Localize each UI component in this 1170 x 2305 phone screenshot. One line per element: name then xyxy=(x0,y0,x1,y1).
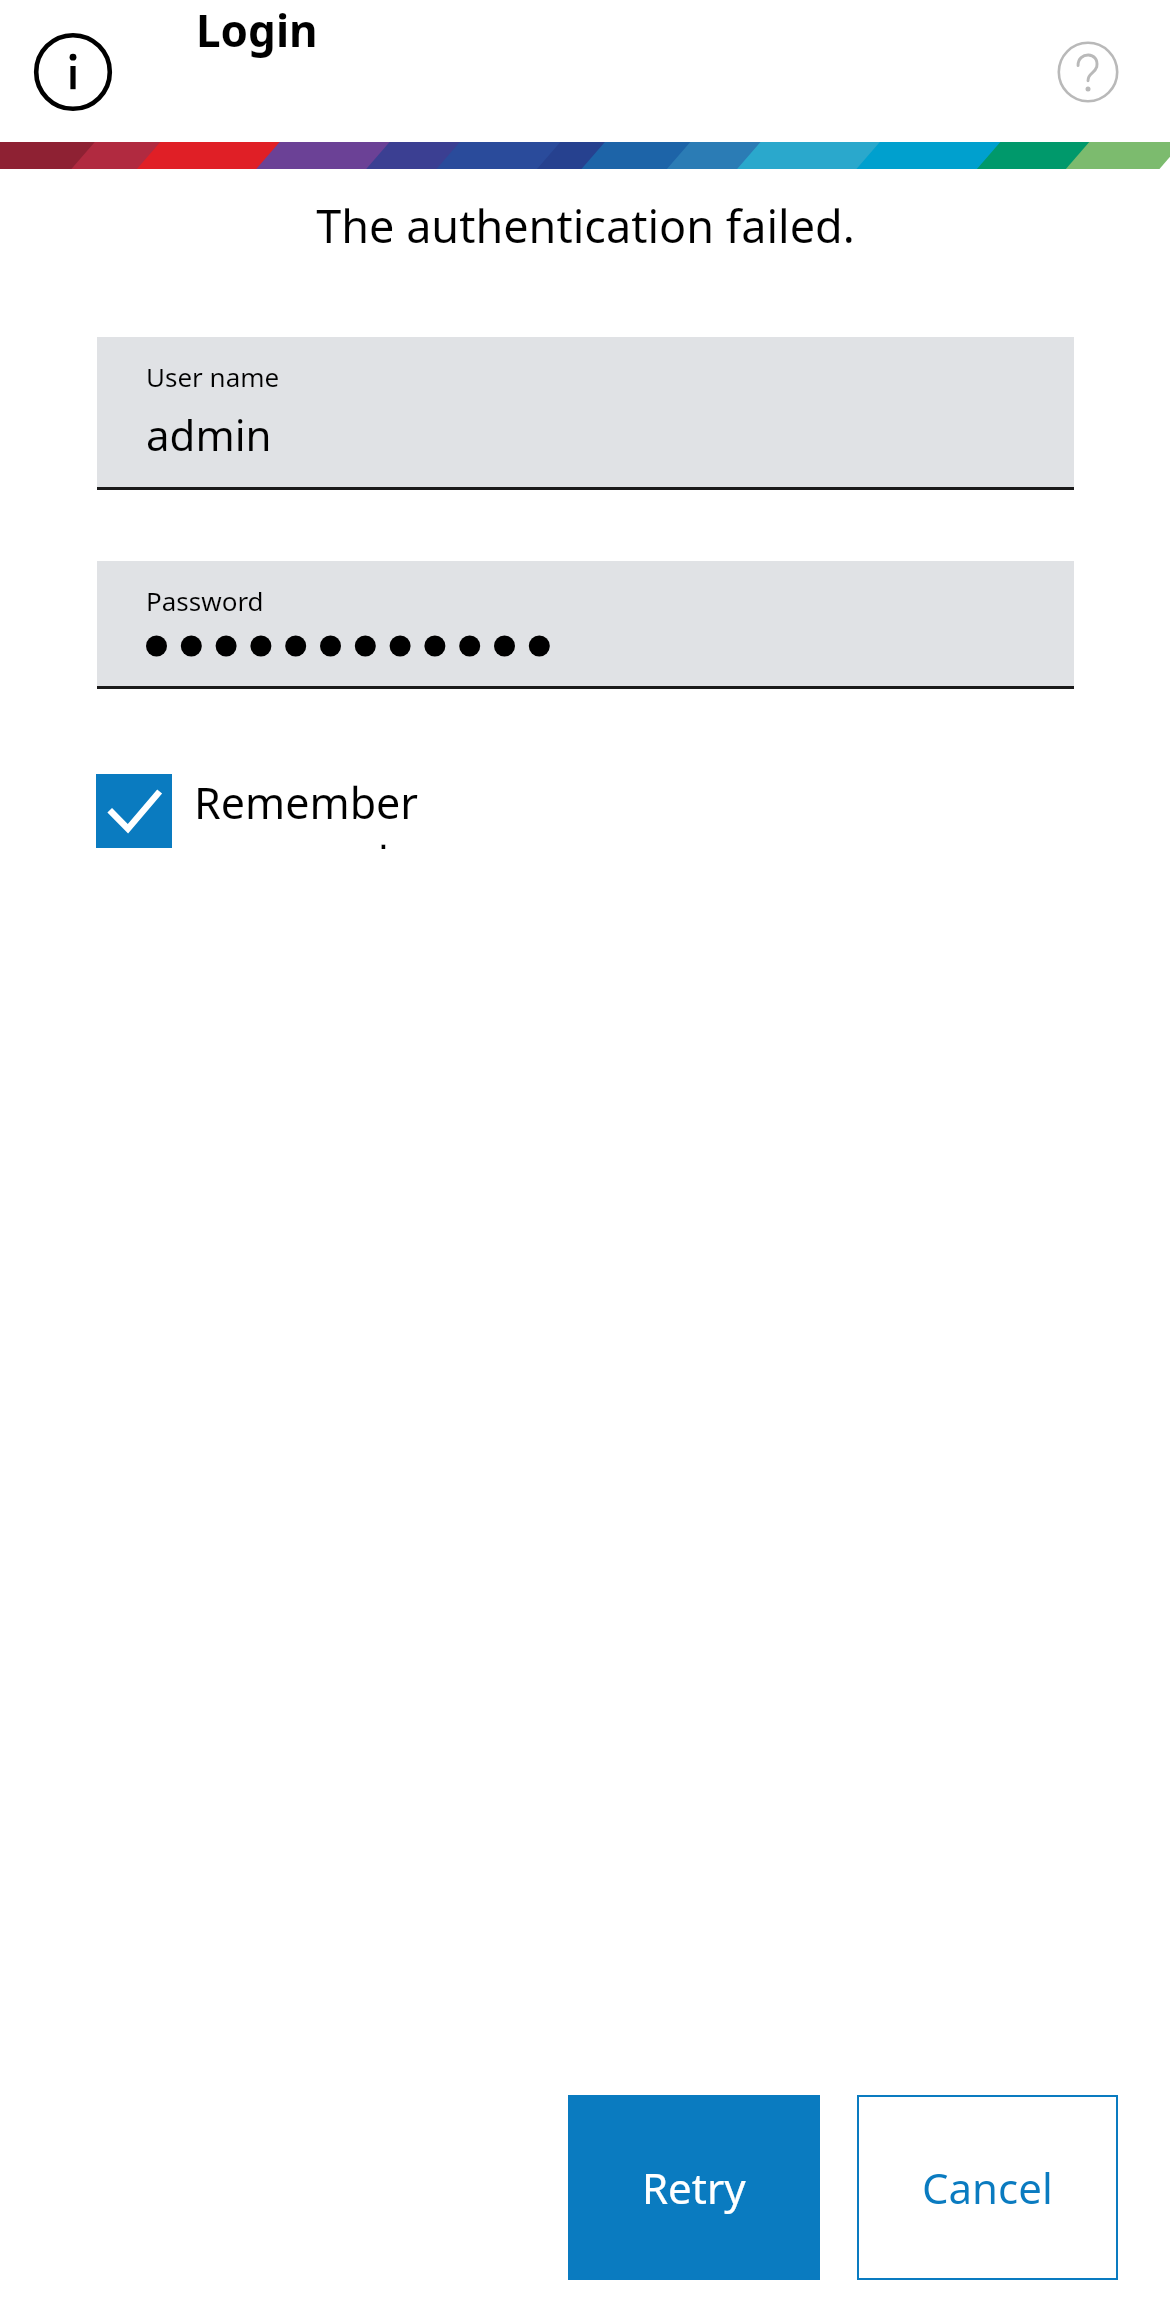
staticText: admin xyxy=(146,406,272,463)
button[interactable]: Cancel xyxy=(857,2095,1118,2280)
staticText: Password xyxy=(146,583,264,618)
button[interactable]: Retry xyxy=(568,2095,820,2280)
staticText: Cancel xyxy=(922,2159,1053,2216)
staticText: Retry xyxy=(642,2159,746,2216)
button[interactable]: Password xyxy=(97,561,1074,689)
staticText: User name xyxy=(146,359,280,394)
staticText: Login xyxy=(196,0,318,60)
button[interactable]: Remember password xyxy=(96,773,576,849)
staticText: The authentication failed. xyxy=(316,195,855,256)
staticText: Remember password xyxy=(194,773,576,849)
button[interactable]: User name xyxy=(97,337,1074,490)
button[interactable]: Help xyxy=(1050,34,1126,110)
button[interactable]: Info xyxy=(29,28,117,116)
